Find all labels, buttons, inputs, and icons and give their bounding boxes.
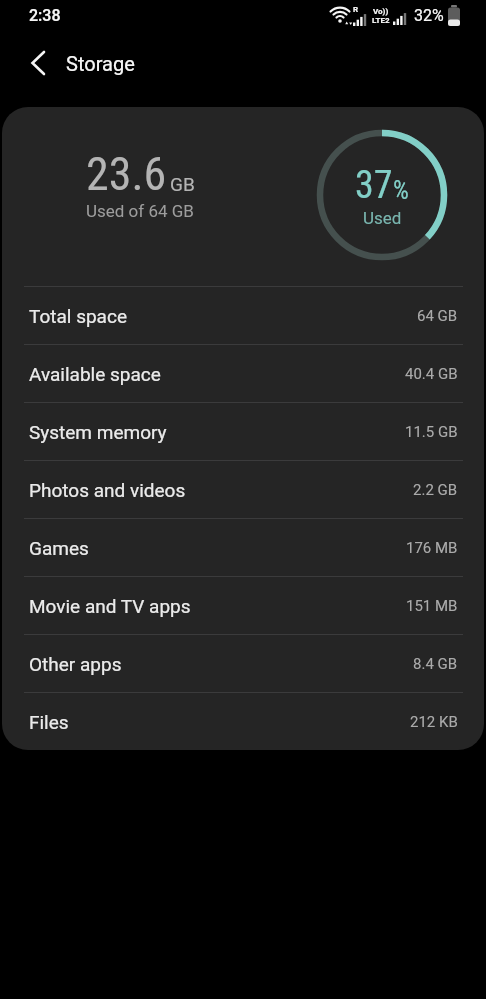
staticText: 32% bbox=[414, 6, 444, 25]
staticText: 11.5 GB bbox=[405, 423, 458, 441]
staticText: 8.4 GB bbox=[413, 655, 458, 673]
staticText: 23.6 bbox=[86, 147, 167, 201]
staticText: System memory bbox=[29, 421, 167, 443]
staticText: Vo)) bbox=[373, 7, 389, 16]
staticText: Photos and videos bbox=[29, 479, 186, 501]
staticText: 2.2 GB bbox=[413, 481, 458, 499]
staticText: 2:38 bbox=[29, 6, 61, 25]
staticText: 40.4 GB bbox=[405, 365, 458, 383]
button[interactable]: Other apps bbox=[2, 635, 484, 692]
staticText: 151 MB bbox=[406, 597, 458, 615]
button[interactable]: Games bbox=[2, 519, 484, 576]
staticText: Other apps bbox=[29, 653, 122, 675]
button[interactable]: Photos and videos bbox=[2, 461, 484, 518]
staticText: 212 KB bbox=[410, 713, 458, 731]
button[interactable]: Available space bbox=[2, 345, 484, 402]
staticText: 176 MB bbox=[406, 539, 458, 557]
staticText: Games bbox=[29, 537, 89, 559]
button[interactable]: System memory bbox=[2, 403, 484, 460]
staticText: R bbox=[353, 5, 359, 14]
staticText: Total space bbox=[29, 305, 127, 327]
staticText: GB bbox=[170, 173, 195, 195]
staticText: Used bbox=[363, 208, 402, 228]
button[interactable]: Total space bbox=[2, 287, 484, 344]
staticText: Used of 64 GB bbox=[86, 201, 194, 221]
staticText: Storage bbox=[66, 52, 135, 75]
staticText: Available space bbox=[29, 363, 161, 385]
staticText: Movie and TV apps bbox=[29, 595, 191, 617]
button[interactable]: Files bbox=[2, 693, 484, 750]
button[interactable]: Movie and TV apps bbox=[2, 577, 484, 634]
staticText: 37 bbox=[355, 163, 393, 208]
button[interactable] bbox=[24, 31, 50, 95]
staticText: LTE2 bbox=[372, 16, 390, 25]
staticText: % bbox=[393, 176, 409, 205]
staticText: 64 GB bbox=[417, 307, 458, 325]
staticText: Files bbox=[29, 711, 69, 733]
